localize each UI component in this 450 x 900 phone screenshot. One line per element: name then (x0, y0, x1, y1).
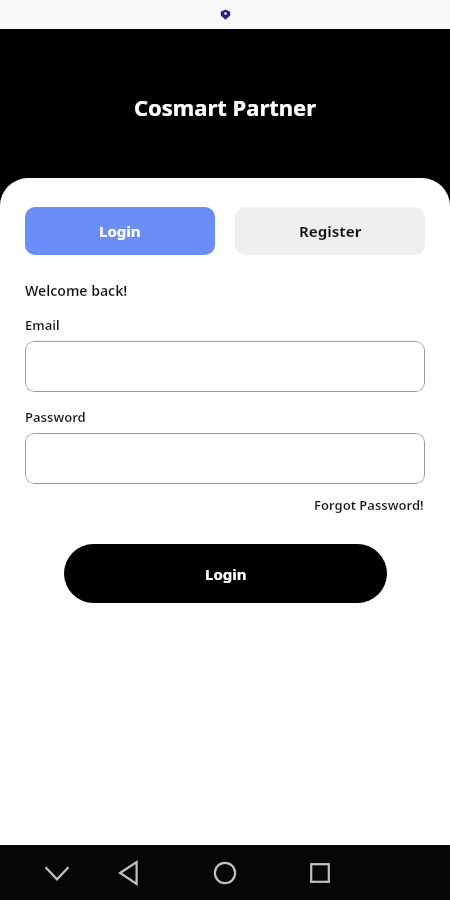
staticText: Login (99, 221, 141, 241)
button[interactable]: Home (203, 851, 247, 895)
button[interactable] (25, 341, 425, 392)
button[interactable]: Login (64, 544, 387, 603)
button[interactable]: Back (108, 851, 152, 895)
staticText: Cosmart Partner (0, 92, 450, 122)
button[interactable]: Forgot Password! (312, 494, 426, 516)
button[interactable]: Hide keyboard (35, 851, 79, 895)
staticText: Register (299, 221, 362, 241)
staticText: Password (25, 408, 86, 426)
button[interactable]: Register (235, 207, 425, 255)
button[interactable] (25, 433, 425, 484)
staticText: Welcome back! (25, 281, 128, 300)
staticText: Email (25, 316, 60, 334)
button[interactable]: Recents (298, 851, 342, 895)
staticText: Forgot Password! (314, 496, 424, 514)
button[interactable]: Login (25, 207, 215, 255)
staticText: Login (205, 564, 247, 584)
